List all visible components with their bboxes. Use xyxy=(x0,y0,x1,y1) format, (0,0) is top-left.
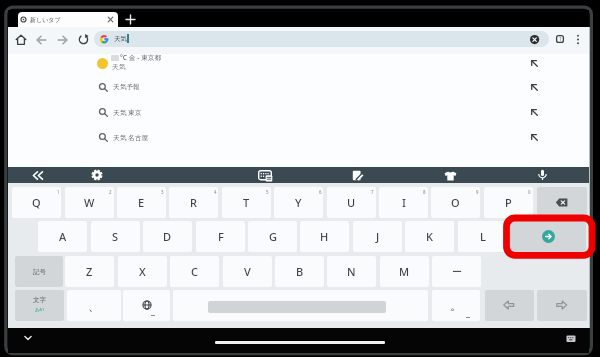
staticText: 天気 xyxy=(112,63,126,71)
staticText: L xyxy=(480,229,486,244)
staticText: 1 xyxy=(57,189,60,195)
button[interactable]: L xyxy=(458,221,507,252)
staticText: 。 xyxy=(450,298,462,313)
button[interactable] xyxy=(94,31,549,47)
button[interactable] xyxy=(537,169,548,181)
button[interactable]: P xyxy=(484,187,533,218)
button[interactable] xyxy=(15,290,64,321)
button[interactable] xyxy=(215,341,385,344)
button[interactable]: A xyxy=(38,221,87,252)
button[interactable]: O xyxy=(431,187,480,218)
button[interactable] xyxy=(24,335,32,341)
staticText: X xyxy=(139,264,146,279)
button[interactable] xyxy=(529,132,540,143)
staticText: 文字 xyxy=(33,296,46,304)
button[interactable] xyxy=(537,290,587,321)
button[interactable] xyxy=(529,107,540,118)
button[interactable]: H xyxy=(300,221,349,252)
button[interactable] xyxy=(556,35,564,43)
staticText: A xyxy=(59,229,67,244)
button[interactable]: Z xyxy=(65,256,114,287)
button[interactable]: W xyxy=(65,187,114,218)
button[interactable]: J xyxy=(353,221,402,252)
staticText: 天気 名古屋 xyxy=(113,133,149,142)
staticText: Q xyxy=(32,195,41,210)
button[interactable]: K xyxy=(405,221,454,252)
button[interactable] xyxy=(123,290,170,321)
button[interactable]: U xyxy=(327,187,376,218)
button[interactable] xyxy=(173,290,428,321)
button[interactable] xyxy=(125,14,136,25)
button[interactable]: Y xyxy=(274,187,323,218)
staticText: 新しいタブ xyxy=(30,16,61,24)
staticText: Y xyxy=(295,195,302,210)
button[interactable] xyxy=(36,35,47,45)
button[interactable] xyxy=(8,126,589,148)
button[interactable]: Q xyxy=(12,187,61,218)
button[interactable]: E xyxy=(117,187,166,218)
button[interactable]: G xyxy=(248,221,297,252)
button[interactable] xyxy=(8,101,589,123)
button[interactable]: M xyxy=(380,256,429,287)
staticText: M xyxy=(399,264,410,279)
staticText: F xyxy=(218,229,224,244)
staticText: 1 xyxy=(559,36,562,42)
button[interactable] xyxy=(352,170,364,181)
staticText: G xyxy=(269,229,277,244)
staticText: S xyxy=(112,229,119,244)
staticText: R xyxy=(190,195,197,210)
button[interactable]: D xyxy=(143,221,192,252)
button[interactable] xyxy=(78,34,89,45)
button[interactable] xyxy=(32,171,44,180)
staticText: J xyxy=(376,229,380,244)
button[interactable]: T xyxy=(222,187,271,218)
button[interactable] xyxy=(444,171,457,181)
button[interactable]: 、 xyxy=(67,290,121,321)
staticText: O xyxy=(451,195,460,210)
staticText: 4 xyxy=(214,189,217,195)
button[interactable]: R xyxy=(169,187,218,218)
button[interactable] xyxy=(530,35,539,44)
button[interactable] xyxy=(485,290,534,321)
button[interactable]: V xyxy=(223,256,272,287)
button[interactable] xyxy=(529,58,540,69)
staticText: °C 金 - 東京都 xyxy=(120,53,162,62)
button[interactable] xyxy=(91,169,103,181)
staticText: D xyxy=(163,229,172,244)
button[interactable] xyxy=(57,35,68,45)
button[interactable] xyxy=(8,76,589,98)
button[interactable] xyxy=(8,54,589,76)
staticText: T xyxy=(243,195,250,210)
button[interactable] xyxy=(107,16,114,23)
button[interactable] xyxy=(566,335,576,343)
button[interactable] xyxy=(510,221,586,252)
staticText: 6 xyxy=(319,189,322,195)
button[interactable] xyxy=(15,34,27,46)
button[interactable]: S xyxy=(91,221,140,252)
button[interactable]: F xyxy=(196,221,245,252)
button[interactable]: 記号 xyxy=(15,256,63,287)
staticText: 天気 東京 xyxy=(113,108,142,117)
staticText: V xyxy=(244,264,251,279)
button[interactable] xyxy=(537,187,587,218)
button[interactable] xyxy=(18,12,118,27)
staticText: I xyxy=(402,195,406,210)
button[interactable]: C xyxy=(170,256,219,287)
staticText: 7 xyxy=(371,189,374,195)
button[interactable]: X xyxy=(118,256,167,287)
staticText: E xyxy=(138,195,145,210)
staticText: 3 xyxy=(161,189,164,195)
staticText: ー xyxy=(452,265,462,278)
button[interactable] xyxy=(575,34,581,45)
staticText: 8 xyxy=(423,189,426,195)
staticText: P xyxy=(505,195,512,210)
button[interactable]: I xyxy=(379,187,428,218)
button[interactable] xyxy=(258,170,273,182)
staticText: B xyxy=(296,264,304,279)
button[interactable]: N xyxy=(327,256,376,287)
button[interactable] xyxy=(529,82,540,93)
staticText: H xyxy=(320,229,329,244)
button[interactable]: ー xyxy=(432,256,481,287)
button[interactable]: B xyxy=(275,256,324,287)
button[interactable]: 。 xyxy=(432,290,480,321)
